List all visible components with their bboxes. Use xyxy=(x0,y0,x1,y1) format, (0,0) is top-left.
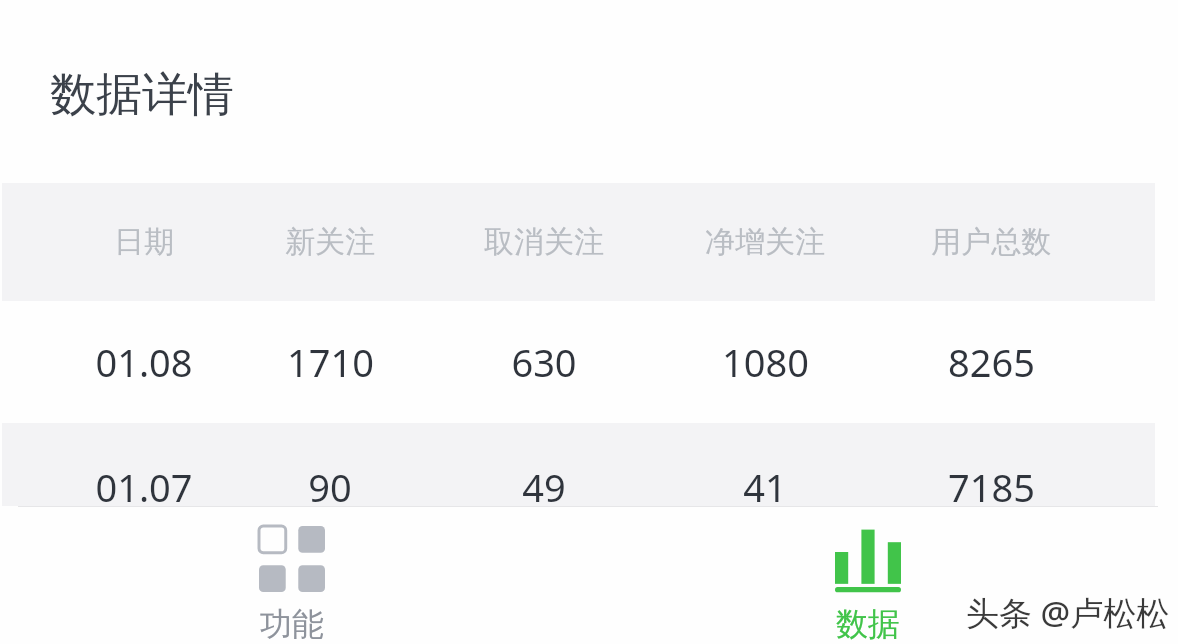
staticText: 90 xyxy=(308,461,352,513)
button[interactable]: 01.08 xyxy=(2,301,1155,423)
button[interactable]: 功能 xyxy=(212,516,372,644)
staticText: 01.07 xyxy=(95,461,193,513)
button[interactable]: 数据 xyxy=(788,516,948,644)
staticText: 数据 xyxy=(836,604,900,644)
button[interactable]: 01.07 xyxy=(2,423,1155,506)
staticText: 8265 xyxy=(948,336,1035,388)
staticText: 49 xyxy=(522,461,566,513)
staticText: 净增关注 xyxy=(705,223,825,261)
staticText: 新关注 xyxy=(285,223,375,261)
staticText: 01.08 xyxy=(95,336,193,388)
staticText: 7185 xyxy=(948,461,1035,513)
staticText: 日期 xyxy=(114,223,174,261)
staticText: 数据详情 xyxy=(50,66,234,124)
staticText: 1710 xyxy=(287,336,374,388)
staticText: 头条 @卢松松 xyxy=(966,590,1170,635)
staticText: 1080 xyxy=(722,336,809,388)
other: 数据 xyxy=(835,524,901,594)
staticText: 取消关注 xyxy=(484,223,604,261)
other: 功能 xyxy=(259,526,325,592)
staticText: 630 xyxy=(511,336,577,388)
staticText: 用户总数 xyxy=(931,223,1051,261)
staticText: 41 xyxy=(743,461,787,513)
staticText: 功能 xyxy=(260,604,324,644)
